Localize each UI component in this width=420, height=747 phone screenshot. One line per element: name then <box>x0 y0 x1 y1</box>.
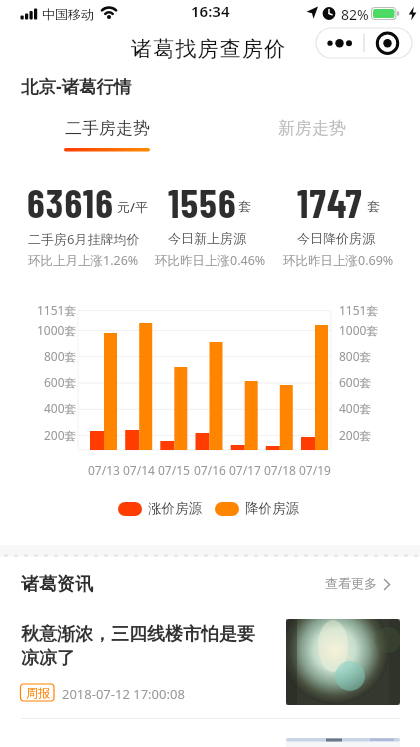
staticText: 1151套 <box>37 302 77 318</box>
staticText: 800套 <box>339 348 372 364</box>
staticText: 中国移动 <box>42 6 94 22</box>
staticText: 07/14 <box>123 462 155 478</box>
staticText: 环比上月上涨1.26% <box>28 252 139 269</box>
staticText: 200套 <box>339 427 372 443</box>
staticText: 82% <box>341 5 369 24</box>
staticText: 秋意渐浓，三四线楼市怕是要 <box>21 623 255 646</box>
staticText: 600套 <box>339 374 372 390</box>
staticText: 07/15 <box>158 462 190 478</box>
button[interactable]: 新房走势 <box>244 112 379 152</box>
staticText: 1000套 <box>339 322 379 338</box>
staticText: 16:34 <box>191 1 230 21</box>
button[interactable] <box>316 28 364 58</box>
staticText: 800套 <box>44 348 77 364</box>
staticText: 凉凉了 <box>21 647 75 670</box>
staticText: 1747 <box>297 178 363 226</box>
staticText: 600套 <box>44 374 77 390</box>
button[interactable] <box>0 608 420 716</box>
staticText: 1556 <box>168 178 237 226</box>
staticText: 63616 <box>27 178 115 226</box>
staticText: 今日新上房源 <box>168 230 246 246</box>
staticText: 07/19 <box>299 462 331 478</box>
staticText: 07/18 <box>264 462 296 478</box>
staticText: 涨价房源 <box>148 500 202 517</box>
staticText: 降价房源 <box>245 500 299 517</box>
staticText: 诸葛资讯 <box>21 573 93 596</box>
staticText: 1151套 <box>339 302 379 318</box>
staticText: 07/13 <box>88 462 120 478</box>
staticText: 1000套 <box>37 322 77 338</box>
button[interactable] <box>364 28 412 58</box>
staticText: 诸葛找房查房价 <box>131 36 287 62</box>
staticText: 07/17 <box>229 462 261 478</box>
staticText: 二手房6月挂牌均价 <box>28 230 140 248</box>
staticText: 套 <box>238 198 251 214</box>
staticText: 二手房走势 <box>65 118 150 139</box>
staticText: 07/16 <box>194 462 226 478</box>
staticText: 400套 <box>44 400 77 416</box>
staticText: 套 <box>367 198 380 214</box>
button[interactable]: 二手房走势 <box>40 112 175 152</box>
button[interactable]: 查看更多 <box>323 570 402 596</box>
staticText: 元/平 <box>117 198 149 216</box>
staticText: 2018-07-12 17:00:08 <box>62 685 185 703</box>
staticText: 环比昨日上涨0.69% <box>283 252 394 269</box>
staticText: 周报 <box>26 685 50 700</box>
staticText: 今日降价房源 <box>297 230 375 246</box>
staticText: 200套 <box>44 427 77 443</box>
staticText: 环比昨日上涨0.46% <box>155 252 266 269</box>
staticText: 北京-诸葛行情 <box>21 74 132 98</box>
staticText: 新房走势 <box>278 118 346 139</box>
staticText: 查看更多 <box>325 575 377 591</box>
staticText: 400套 <box>339 400 372 416</box>
